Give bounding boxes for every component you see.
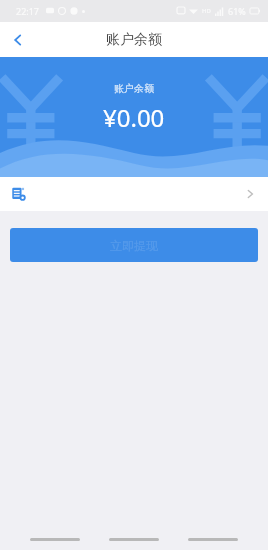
other: Transaction records bbox=[12, 187, 26, 201]
other: Open bbox=[244, 188, 256, 200]
button[interactable]: Navigation bbox=[30, 538, 80, 541]
staticText: 账户余额 bbox=[106, 31, 162, 49]
staticText: HD bbox=[202, 7, 211, 15]
staticText: 立即提现 bbox=[110, 238, 158, 253]
staticText: ¥0.00 bbox=[103, 101, 165, 134]
button[interactable]: Navigation bbox=[109, 538, 159, 541]
staticText: 账户余额 bbox=[114, 82, 154, 95]
button[interactable]: Navigation bbox=[188, 538, 238, 541]
staticText: 22:17 bbox=[16, 5, 40, 17]
button[interactable]: 立即提现 bbox=[10, 228, 258, 262]
button[interactable]: Back bbox=[0, 22, 36, 57]
staticText: 61% bbox=[228, 5, 246, 17]
button[interactable]: Transaction records bbox=[0, 177, 268, 211]
